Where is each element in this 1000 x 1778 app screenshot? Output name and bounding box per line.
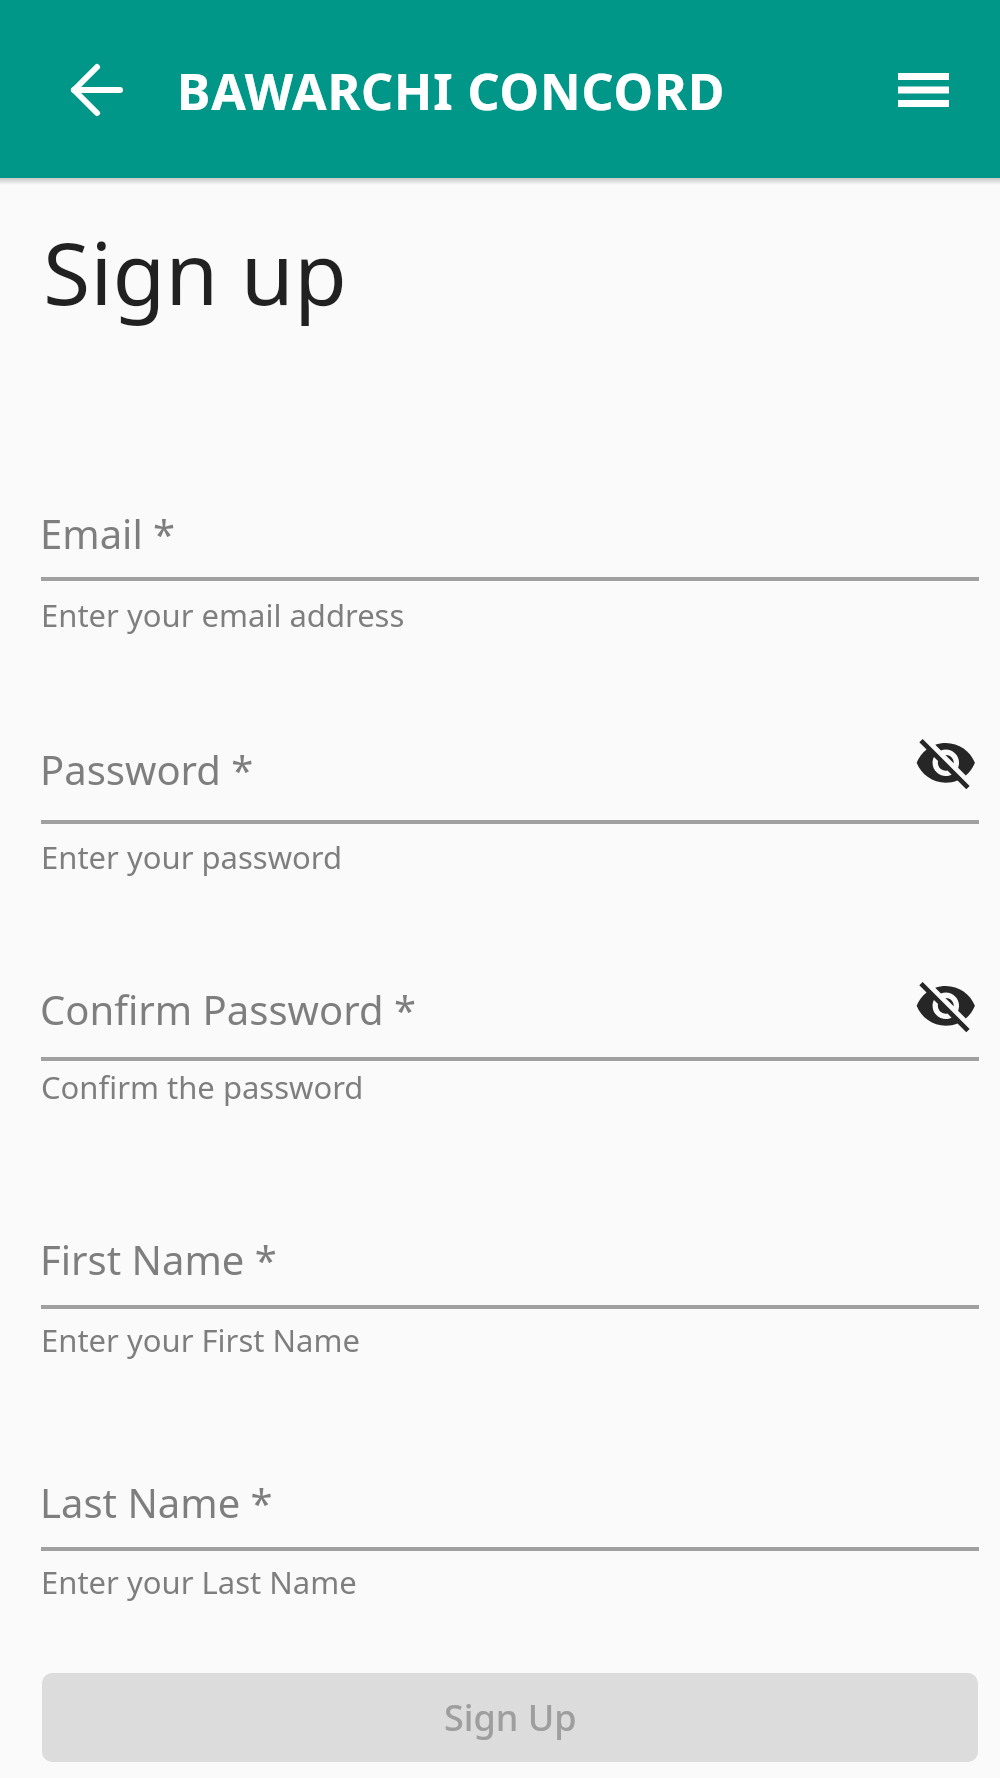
staticText: Enter your First Name	[41, 1319, 360, 1361]
staticText: Last Name *	[40, 1475, 273, 1529]
button[interactable]	[41, 983, 979, 1061]
button[interactable]	[60, 53, 134, 127]
staticText: First Name *	[40, 1232, 277, 1286]
staticText: BAWARCHI CONCORD	[177, 57, 726, 125]
staticText: Enter your Last Name	[41, 1561, 357, 1603]
button[interactable]	[886, 64, 962, 116]
button[interactable]: Sign Up	[42, 1673, 978, 1762]
staticText: Enter your email address	[41, 594, 405, 636]
staticText: Confirm Password *	[40, 982, 416, 1036]
staticText: Email *	[40, 506, 176, 560]
staticText: Password *	[40, 742, 254, 796]
button[interactable]	[41, 743, 979, 824]
button[interactable]	[41, 1476, 979, 1551]
button[interactable]	[914, 974, 978, 1038]
staticText: Confirm the password	[41, 1066, 364, 1108]
staticText: Enter your password	[41, 836, 343, 878]
staticText: Sign Up	[444, 1693, 577, 1742]
button[interactable]	[41, 1233, 979, 1309]
button[interactable]	[914, 731, 978, 795]
staticText: Sign up	[43, 213, 347, 330]
button[interactable]	[41, 507, 979, 581]
